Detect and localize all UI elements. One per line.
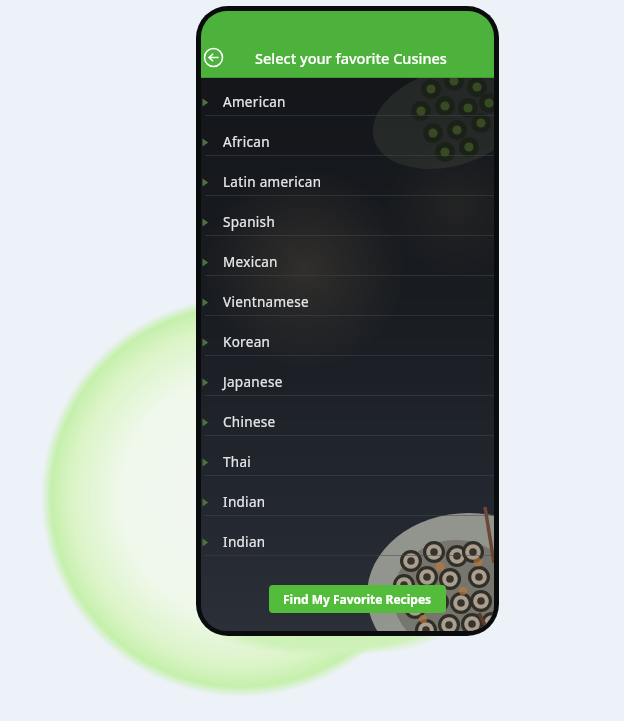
button[interactable] bbox=[203, 47, 224, 68]
button[interactable]: American bbox=[201, 82, 494, 122]
button[interactable]: African bbox=[201, 122, 494, 162]
button[interactable]: Latin american bbox=[201, 162, 494, 202]
staticText: Spanish bbox=[223, 213, 276, 231]
button[interactable]: Indian bbox=[201, 522, 494, 562]
button[interactable]: Korean bbox=[201, 322, 494, 362]
button[interactable]: Spanish bbox=[201, 202, 494, 242]
staticText: Indian bbox=[223, 533, 266, 551]
button[interactable]: Indian bbox=[201, 482, 494, 522]
staticText: Korean bbox=[223, 333, 271, 351]
button[interactable]: Mexican bbox=[201, 242, 494, 282]
staticText: Chinese bbox=[223, 413, 276, 431]
staticText: Vientnamese bbox=[223, 293, 309, 311]
staticText: Find My Favorite Recipes bbox=[283, 591, 432, 607]
staticText: African bbox=[223, 133, 270, 151]
staticText: Latin american bbox=[223, 173, 322, 191]
button[interactable]: Chinese bbox=[201, 402, 494, 442]
staticText: American bbox=[223, 93, 286, 111]
staticText: Indian bbox=[223, 493, 266, 511]
staticText: Thai bbox=[223, 453, 252, 471]
staticText: Select your favorite Cusines bbox=[255, 48, 447, 68]
staticText: Japanese bbox=[223, 373, 283, 391]
button[interactable]: Japanese bbox=[201, 362, 494, 402]
button[interactable]: Find My Favorite Recipes bbox=[269, 585, 446, 613]
staticText: Mexican bbox=[223, 253, 278, 271]
button[interactable]: Thai bbox=[201, 442, 494, 482]
button[interactable]: Vientnamese bbox=[201, 282, 494, 322]
